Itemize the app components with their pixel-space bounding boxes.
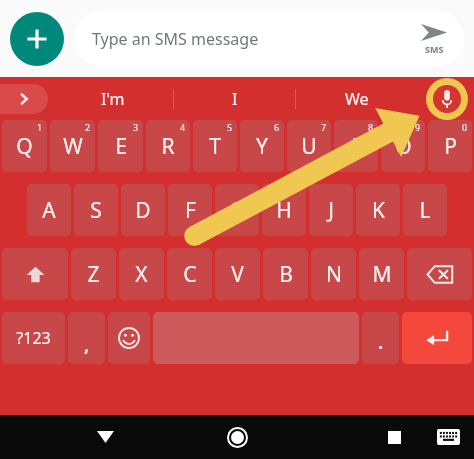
button[interactable]: More suggestions [0,84,48,114]
staticText: A [42,196,56,225]
button[interactable]: V [215,248,260,300]
button[interactable]: ?123 [2,312,65,364]
staticText: ?123 [16,327,51,349]
staticText: , [84,333,90,358]
staticText: Z [87,260,100,289]
button[interactable]: T [193,120,237,172]
button[interactable]: X [119,248,164,300]
button[interactable]: Voice input [426,78,468,120]
button[interactable]: F [168,184,212,236]
staticText: Type an SMS message [92,28,412,50]
button[interactable]: A [27,184,71,236]
staticText: F [185,196,196,225]
staticText: . [378,330,384,355]
staticText: N [326,260,342,289]
staticText: Y [256,132,268,161]
staticText: 6 [274,121,280,133]
staticText: I [352,132,360,161]
staticText: 0 [462,121,468,133]
button[interactable]: J [309,184,353,236]
staticText: C [183,260,197,289]
button[interactable]: K [356,184,400,236]
staticText: T [209,132,221,161]
button[interactable]: R [146,120,190,172]
button[interactable]: Home [202,415,272,459]
staticText: V [231,260,244,289]
staticText: 3 [133,121,139,133]
staticText: I'm [101,88,125,110]
staticText: 4 [180,121,186,133]
button[interactable]: S [74,184,118,236]
button[interactable]: Hide keyboard [60,415,150,459]
staticText: 7 [321,121,327,133]
button[interactable]: H [262,184,306,236]
staticText: I [232,88,238,110]
button[interactable]: G [215,184,259,236]
button[interactable]: Type an SMS message [74,11,464,67]
button[interactable]: , [68,312,105,364]
button[interactable]: U [287,120,331,172]
button[interactable]: Add attachment [10,12,64,66]
button[interactable]: C [167,248,212,300]
staticText: We [345,88,369,110]
button[interactable]: Z [71,248,116,300]
staticText: X [135,260,148,289]
button[interactable]: Q [2,120,47,172]
button[interactable]: Switch keyboard [422,415,474,459]
button[interactable]: We [296,77,418,120]
staticText: E [115,132,127,161]
button[interactable]: W [50,120,95,172]
button[interactable]: Y [240,120,284,172]
staticText: 5 [227,121,233,133]
staticText: P [444,132,457,161]
staticText: H [276,196,292,225]
button[interactable]: N [311,248,356,300]
button[interactable]: Backspace [407,248,472,300]
staticText: B [279,260,293,289]
button[interactable]: O [381,120,425,172]
staticText: W [63,132,83,161]
button[interactable]: I [174,77,296,120]
staticText: K [372,196,385,225]
button[interactable]: Enter [402,312,472,364]
staticText: J [328,196,334,225]
staticText: D [135,196,151,225]
staticText: M [372,260,392,289]
staticText: R [161,132,175,161]
button[interactable]: B [263,248,308,300]
staticText: 1 [37,121,43,133]
button[interactable]: I [334,120,378,172]
button[interactable]: Shift [2,248,68,300]
button[interactable]: I'm [52,77,174,120]
button[interactable]: M [359,248,404,300]
staticText: 8 [368,121,374,133]
staticText: O [395,132,412,161]
staticText: 2 [85,121,91,133]
button[interactable]: P [428,120,472,172]
staticText: U [301,132,317,161]
button[interactable]: L [403,184,447,236]
button[interactable]: Send SMS [412,11,456,67]
staticText: S [90,196,102,225]
staticText: 9 [415,121,421,133]
button[interactable]: Emoji [108,312,150,364]
staticText: L [419,196,431,225]
button[interactable]: . [362,312,399,364]
button[interactable]: E [98,120,143,172]
staticText: Q [16,132,33,161]
button[interactable]: Recent apps [368,415,420,459]
staticText: SMS [425,43,444,55]
staticText: G [229,196,245,225]
button[interactable]: D [121,184,165,236]
